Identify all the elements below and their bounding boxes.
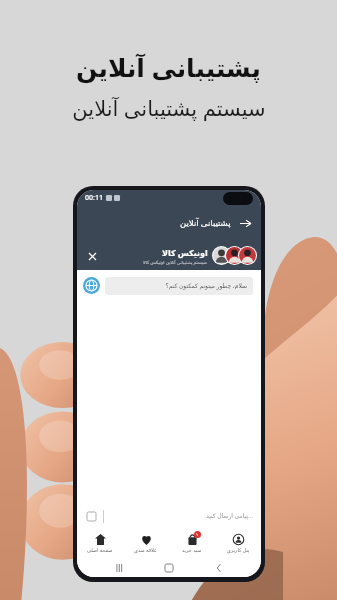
button[interactable]: صفحه اصلی xyxy=(77,529,123,559)
staticText: سیستم پشتیبانی آنلاین xyxy=(72,94,266,123)
staticText: پنل کاربری xyxy=(227,547,250,554)
staticText: سبد خرید xyxy=(182,547,202,554)
staticText: ۱ xyxy=(196,532,199,537)
staticText: اونیکس کالا xyxy=(162,247,208,258)
staticText: علاقه مندی xyxy=(134,547,158,554)
staticText: صفحه اصلی xyxy=(87,547,113,554)
button[interactable]: پنل کاربری xyxy=(215,529,261,559)
staticText: سیستم پشتیبانی آنلاین اونیکس کالا xyxy=(143,259,208,265)
staticText: پشتیبانی آنلاین xyxy=(180,217,231,229)
staticText: 00:11 xyxy=(85,193,103,203)
button[interactable]: Attach xyxy=(85,510,98,523)
staticText: پشتیبانی آنلاین xyxy=(76,50,261,84)
button[interactable]: Recents xyxy=(113,561,127,575)
button[interactable]: Home xyxy=(162,561,176,575)
button[interactable]: Close xyxy=(84,248,100,264)
button[interactable]: علاقه مندی xyxy=(123,529,169,559)
staticText: سلام، چطور میتونم کمکتون کنم؟ xyxy=(165,282,247,290)
button[interactable]: ۱ xyxy=(169,529,215,559)
button[interactable]: Back xyxy=(238,216,252,230)
button[interactable]: Back xyxy=(212,561,226,575)
staticText: پیامی ارسال کنید... xyxy=(206,512,253,520)
